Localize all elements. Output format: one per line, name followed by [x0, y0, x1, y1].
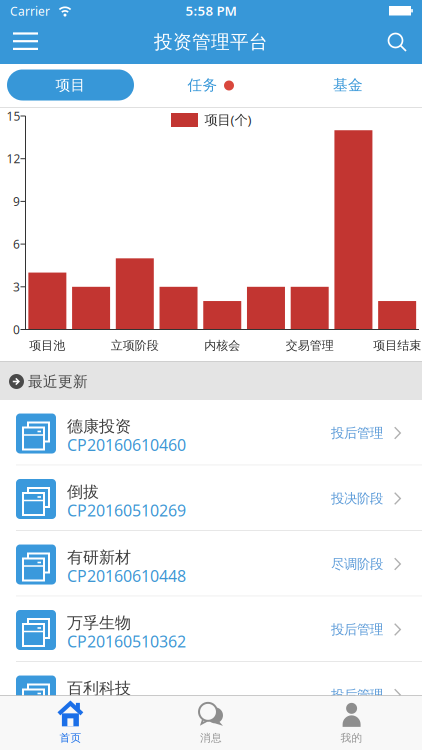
staticText: 投后管理 [331, 425, 383, 441]
staticText: CP20160510269 [67, 500, 186, 521]
staticText: 万孚生物 [67, 613, 131, 633]
button[interactable]: 倒拔 [0, 465, 422, 531]
staticText: 项目 [55, 76, 85, 94]
button[interactable]: Menu [5, 24, 46, 57]
staticText: 百利科技 [67, 678, 131, 698]
staticText: CP20160510362 [67, 631, 186, 652]
staticText: 5:58 PM [185, 2, 236, 19]
staticText: CP20160510355 [67, 696, 186, 717]
staticText: 投决阶段 [331, 490, 383, 507]
staticText: 项目(个) [204, 111, 251, 128]
staticText: 6 [13, 236, 20, 252]
button[interactable]: Search [379, 24, 414, 59]
button[interactable]: 项目 [7, 69, 134, 100]
staticText: 倒拔 [67, 482, 99, 502]
staticText: 投后管理 [331, 687, 383, 703]
staticText: 项目池 [29, 338, 65, 353]
button[interactable]: 德康投资 [0, 400, 422, 465]
button[interactable]: 万孚生物 [0, 596, 422, 662]
staticText: 尽调阶段 [331, 556, 383, 572]
staticText: 基金 [333, 76, 363, 94]
staticText: 3 [13, 279, 20, 295]
staticText: 任务 [187, 76, 217, 94]
button[interactable]: 有研新材 [0, 531, 422, 596]
staticText: 有研新材 [67, 547, 131, 567]
button[interactable]: 基金 [284, 69, 411, 100]
staticText: CP20160610448 [67, 565, 186, 586]
button[interactable]: 百利科技 [0, 662, 422, 727]
staticText: 项目结束 [373, 338, 421, 353]
staticText: CP20160610460 [67, 434, 186, 455]
button[interactable]: 首页 [0, 696, 141, 749]
staticText: 首页 [59, 731, 81, 744]
staticText: 内核会 [204, 338, 240, 353]
staticText: 交易管理 [286, 338, 334, 353]
staticText: Carrier [10, 3, 50, 19]
staticText: 立项阶段 [111, 338, 159, 353]
button[interactable]: 消息 [141, 696, 281, 749]
staticText: 消息 [200, 731, 222, 744]
staticText: 12 [6, 151, 20, 167]
button[interactable]: 任务 [147, 69, 274, 100]
staticText: 投后管理 [331, 621, 383, 638]
staticText: 投资管理平台 [154, 30, 268, 53]
staticText: 0 [13, 321, 20, 337]
staticText: 我的 [341, 731, 363, 744]
staticText: 德康投资 [67, 416, 131, 436]
staticText: 15 [6, 108, 20, 124]
staticText: 9 [13, 193, 20, 209]
button[interactable]: 我的 [281, 696, 422, 749]
staticText: 最近更新 [28, 372, 88, 390]
